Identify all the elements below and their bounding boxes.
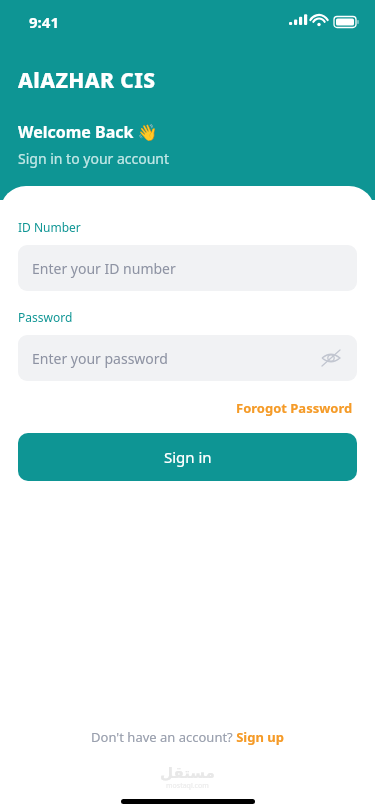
button[interactable]: Forogot Password xyxy=(232,395,357,421)
staticText: Welcome Back 👋 xyxy=(18,121,158,143)
staticText: Sign in to your account xyxy=(18,149,170,168)
button[interactable]: Enter your ID number xyxy=(18,245,357,291)
staticText: Forogot Password xyxy=(236,399,353,417)
button[interactable]: Don't have an account? Sign up xyxy=(87,724,288,750)
staticText: مستقل xyxy=(160,764,215,781)
button[interactable]: Show password xyxy=(319,346,343,370)
staticText: Password xyxy=(18,309,73,325)
staticText: ID Number xyxy=(18,219,81,235)
staticText: AlAZHAR CIS xyxy=(18,66,156,95)
staticText: Enter your password xyxy=(32,349,319,368)
staticText: Sign in xyxy=(164,447,212,467)
staticText: mostaql.com xyxy=(166,781,209,791)
staticText: Enter your ID number xyxy=(32,259,343,278)
staticText: Don't have an account? Sign up xyxy=(91,728,284,746)
button[interactable]: Enter your password xyxy=(18,335,357,381)
button[interactable]: Sign in xyxy=(18,433,357,481)
staticText: 9:41 xyxy=(29,12,59,32)
